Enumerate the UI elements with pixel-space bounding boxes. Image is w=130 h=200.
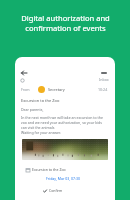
staticText: Waiting for your answer.: [21, 130, 61, 135]
staticText: Digital authorization and confirmation o…: [21, 13, 110, 33]
staticText: Inbox: [99, 77, 109, 82]
button[interactable]: Confirm: [43, 188, 63, 193]
staticText: Friday, Mar 03, 07:30: [46, 176, 81, 181]
button[interactable]: More options: [100, 69, 108, 77]
staticText: 10:24: [98, 87, 108, 92]
button[interactable]: Label: [18, 76, 26, 84]
staticText: In the next month we will take an excurs…: [21, 115, 108, 130]
staticText: Excursion to the Zoo: [21, 98, 60, 103]
staticText: Excursion to the Zoo: [32, 167, 66, 172]
staticText: Dear parents,: [21, 107, 44, 112]
staticText: Secretary: [48, 87, 65, 92]
staticText: From: [21, 87, 30, 92]
button[interactable]: Back: [20, 69, 28, 77]
staticText: Confirm: [49, 188, 63, 193]
